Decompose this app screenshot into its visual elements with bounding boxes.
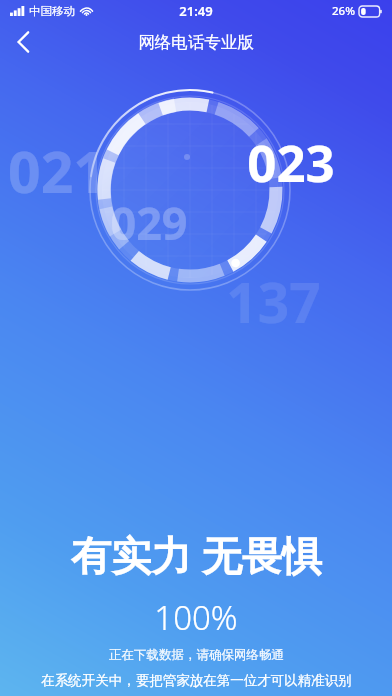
staticText: 中国移动 <box>29 4 75 18</box>
staticText: 26% <box>332 3 355 19</box>
staticText: 有实力 无畏惧 <box>71 527 322 582</box>
button[interactable]: Back <box>0 22 46 62</box>
staticText: 网络电话专业版 <box>138 32 254 53</box>
staticText: 023 <box>247 127 335 196</box>
staticText: 137 <box>226 264 321 339</box>
staticText: 在系统开关中，要把管家放在第一位才可以精准识别 <box>41 672 352 689</box>
staticText: 100% <box>154 595 238 640</box>
staticText: 029 <box>110 192 188 253</box>
staticText: 021 <box>8 132 106 210</box>
staticText: 正在下载数据，请确保网络畅通 <box>109 647 284 663</box>
staticText: 21:49 <box>179 2 213 20</box>
